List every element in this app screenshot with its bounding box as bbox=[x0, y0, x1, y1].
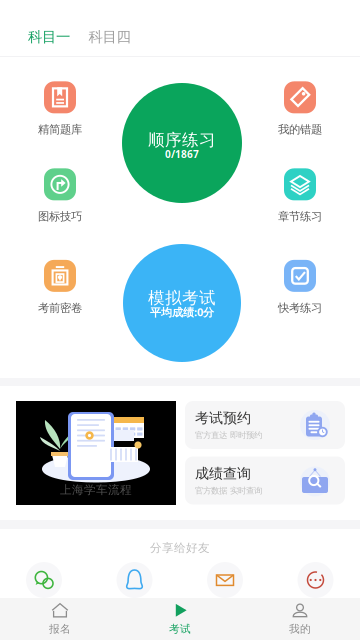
staticText: 官方直达 即时预约 bbox=[195, 430, 262, 441]
button[interactable]: 精简题库 bbox=[15, 82, 105, 136]
staticText: 考试 bbox=[169, 622, 191, 636]
button[interactable]: 我的错题 bbox=[255, 82, 345, 136]
staticText: 顺序练习 bbox=[148, 130, 216, 150]
button[interactable]: 科目一 bbox=[21, 20, 77, 54]
button[interactable]: 微信 bbox=[26, 562, 62, 598]
staticText: 图标技巧 bbox=[38, 209, 82, 224]
button[interactable]: 科目四 bbox=[81, 20, 137, 54]
staticText: 我的 bbox=[289, 622, 311, 636]
button[interactable]: 考试 bbox=[120, 598, 240, 640]
button[interactable]: 章节练习 bbox=[255, 169, 345, 223]
staticText: 考试预约 bbox=[195, 409, 251, 427]
button[interactable]: 我的 bbox=[240, 598, 360, 640]
button[interactable]: 顺序练习 bbox=[122, 83, 242, 203]
staticText: 我的错题 bbox=[278, 122, 322, 137]
staticText: 0/1867 bbox=[165, 147, 199, 161]
button[interactable]: 考试预约 bbox=[185, 401, 345, 449]
button[interactable]: QQ bbox=[116, 562, 152, 598]
button[interactable]: 报名 bbox=[0, 598, 120, 640]
staticText: 报名 bbox=[49, 622, 71, 636]
button[interactable]: 上海学车流程 bbox=[16, 401, 176, 505]
button[interactable]: 邮件 bbox=[207, 562, 243, 598]
button[interactable]: 成绩查询 bbox=[185, 456, 345, 504]
staticText: 考前密卷 bbox=[38, 301, 82, 315]
button[interactable]: 模拟考试 bbox=[123, 244, 241, 362]
staticText: 分享给好友 bbox=[150, 541, 210, 555]
button[interactable]: 图标技巧 bbox=[15, 169, 105, 223]
staticText: 模拟考试 bbox=[148, 288, 216, 308]
button[interactable]: 考前密卷 bbox=[15, 260, 105, 314]
staticText: 快考练习 bbox=[278, 301, 322, 315]
staticText: 精简题库 bbox=[38, 122, 82, 137]
staticText: 平均成绩:0分 bbox=[150, 304, 214, 320]
staticText: 章节练习 bbox=[278, 209, 322, 224]
staticText: 科目四 bbox=[88, 28, 130, 46]
button[interactable]: 更多 bbox=[297, 562, 333, 598]
staticText: 成绩查询 bbox=[195, 465, 251, 482]
staticText: 上海学车流程 bbox=[60, 483, 132, 497]
staticText: 官方数据 实时查询 bbox=[195, 485, 262, 496]
staticText: 科目一 bbox=[28, 28, 70, 46]
button[interactable]: 快考练习 bbox=[255, 260, 345, 314]
